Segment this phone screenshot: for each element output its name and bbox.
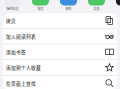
staticText: 添加书签 [6,48,26,55]
staticText: 加入阅读列表 [6,33,36,40]
staticText: 信息 [93,6,99,11]
button[interactable]: 备忘录 [110,0,120,11]
button[interactable]: 加入阅读列表 [3,29,117,44]
button[interactable]: 微信 [26,0,54,11]
staticText: 邮件 [65,6,71,11]
button[interactable]: 信息 [82,0,110,11]
staticText: 隔空投送 [6,6,18,11]
button[interactable]: 隔空投送 [0,0,26,11]
staticText: 添加到个人收藏 [6,64,41,71]
button[interactable]: 添加书签 [3,44,117,59]
staticText: 在页面上查找 [6,80,36,87]
button[interactable]: 邮件 [54,0,82,11]
button[interactable]: 在页面上查找 [3,76,117,89]
button[interactable]: 添加到个人收藏 [3,60,117,75]
staticText: 微信 [37,6,43,11]
button[interactable]: 拷贝 [3,13,117,28]
staticText: 拷贝 [6,17,16,24]
